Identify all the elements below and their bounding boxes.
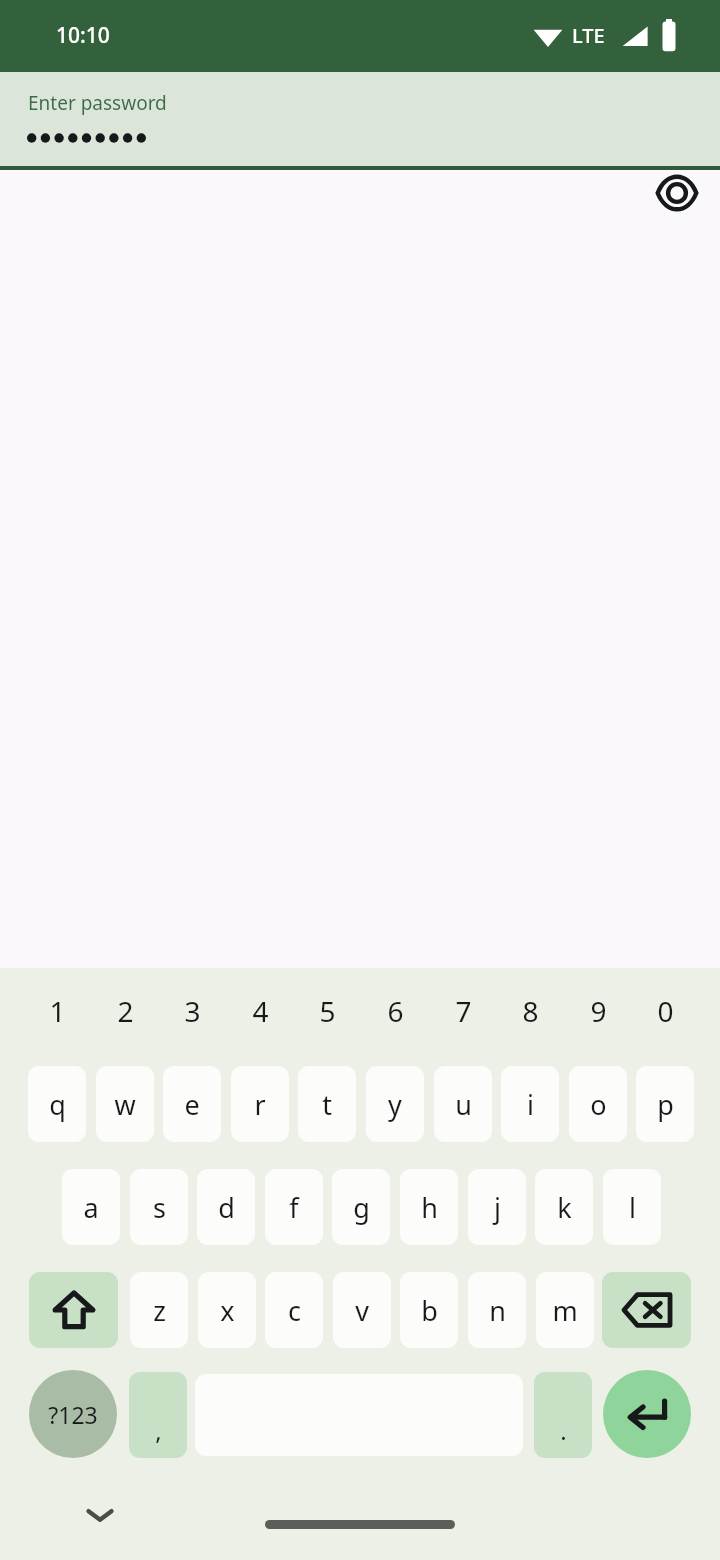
button[interactable]: r [231, 1066, 289, 1142]
button[interactable]: . [534, 1372, 592, 1458]
button[interactable]: 4 [230, 978, 290, 1044]
staticText: d [218, 1189, 235, 1226]
staticText: ?123 [48, 1399, 98, 1430]
staticText: q [49, 1086, 66, 1123]
staticText: 4 [252, 992, 269, 1030]
staticText: w [114, 1086, 136, 1123]
button[interactable]: d [197, 1169, 255, 1245]
staticText: 2 [117, 992, 134, 1030]
staticText: i [527, 1086, 534, 1123]
staticText: . [560, 1414, 567, 1447]
button[interactable]: c [265, 1272, 323, 1348]
button[interactable]: x [198, 1272, 256, 1348]
button[interactable]: Shift [29, 1272, 118, 1348]
button[interactable]: y [366, 1066, 424, 1142]
staticText: 9 [590, 992, 607, 1030]
button[interactable]: 2 [95, 978, 155, 1044]
staticText: h [421, 1189, 438, 1226]
button[interactable]: e [163, 1066, 221, 1142]
button[interactable]: Enter password [0, 72, 720, 166]
button[interactable]: w [96, 1066, 154, 1142]
staticText: x [220, 1292, 235, 1329]
staticText: u [455, 1086, 472, 1123]
button[interactable]: f [265, 1169, 323, 1245]
button[interactable]: u [434, 1066, 492, 1142]
button[interactable]: l [603, 1169, 661, 1245]
staticText: o [590, 1086, 607, 1123]
button[interactable]: v [333, 1272, 391, 1348]
button[interactable]: Backspace [602, 1272, 691, 1348]
staticText: k [557, 1189, 572, 1226]
button[interactable]: 0 [635, 978, 695, 1044]
staticText: t [322, 1086, 332, 1123]
staticText: z [153, 1292, 166, 1329]
button[interactable]: q [28, 1066, 86, 1142]
staticText: , [155, 1414, 162, 1447]
staticText: j [494, 1189, 501, 1226]
staticText: m [552, 1292, 578, 1329]
staticText: y [388, 1086, 402, 1123]
button[interactable]: Show password [649, 165, 705, 221]
button[interactable]: 1 [27, 978, 87, 1044]
staticText: Enter password [28, 90, 167, 116]
staticText: l [629, 1189, 636, 1226]
button[interactable]: a [62, 1169, 120, 1245]
button[interactable]: 8 [500, 978, 560, 1044]
staticText: 5 [319, 992, 336, 1030]
staticText: p [657, 1086, 674, 1123]
staticText: a [83, 1189, 99, 1226]
button[interactable]: Hide keyboard [72, 1492, 128, 1538]
staticText: e [184, 1086, 200, 1123]
staticText: b [421, 1292, 438, 1329]
button[interactable]: o [569, 1066, 627, 1142]
button[interactable]: , [129, 1372, 187, 1458]
button[interactable]: g [332, 1169, 390, 1245]
staticText: 8 [522, 992, 539, 1030]
staticText: 3 [184, 992, 201, 1030]
staticText: n [489, 1292, 506, 1329]
button[interactable]: 9 [568, 978, 628, 1044]
staticText: LTE [572, 22, 605, 49]
button[interactable]: 3 [162, 978, 222, 1044]
staticText: 10:10 [56, 21, 110, 50]
staticText: 0 [657, 992, 674, 1030]
staticText: c [288, 1292, 301, 1329]
button[interactable]: j [468, 1169, 526, 1245]
staticText: s [153, 1189, 166, 1226]
button[interactable]: p [636, 1066, 694, 1142]
button[interactable]: i [501, 1066, 559, 1142]
button[interactable]: 5 [297, 978, 357, 1044]
staticText: g [353, 1189, 370, 1226]
button[interactable]: 7 [433, 978, 493, 1044]
button[interactable]: s [130, 1169, 188, 1245]
button[interactable]: 6 [365, 978, 425, 1044]
staticText: r [254, 1086, 266, 1123]
button[interactable]: n [468, 1272, 526, 1348]
button[interactable]: m [536, 1272, 594, 1348]
staticText: v [355, 1292, 369, 1329]
button[interactable]: z [130, 1272, 188, 1348]
staticText: 1 [49, 992, 66, 1030]
button[interactable]: b [400, 1272, 458, 1348]
staticText: f [289, 1189, 299, 1226]
button[interactable]: ?123 [29, 1370, 117, 1458]
button[interactable]: k [535, 1169, 593, 1245]
button[interactable]: Enter [603, 1370, 691, 1458]
staticText: 7 [455, 992, 472, 1030]
button[interactable]: h [400, 1169, 458, 1245]
button[interactable]: t [298, 1066, 356, 1142]
staticText: 6 [387, 992, 404, 1030]
